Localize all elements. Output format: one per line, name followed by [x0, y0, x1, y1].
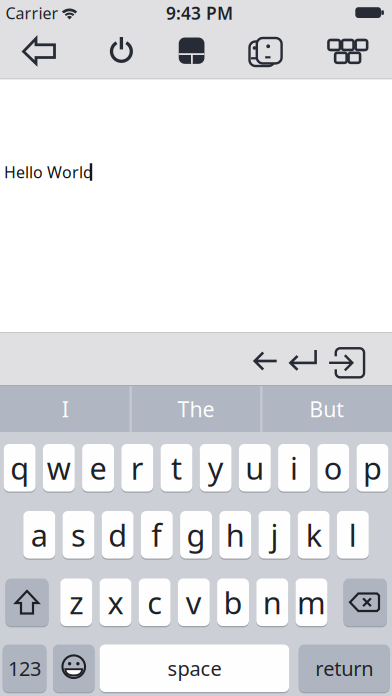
button[interactable]: p	[356, 442, 388, 493]
button[interactable]: space	[100, 643, 289, 693]
staticText: r	[131, 447, 144, 488]
staticText: 123	[8, 655, 41, 682]
button[interactable]: z	[60, 577, 92, 627]
staticText: y	[208, 447, 224, 488]
staticText: a	[31, 514, 48, 555]
staticText: m	[297, 582, 326, 623]
button[interactable]: n	[256, 577, 288, 627]
button[interactable]: e	[82, 442, 114, 493]
staticText: Hello World	[4, 161, 93, 183]
button[interactable]: I	[2, 386, 128, 432]
button[interactable]	[316, 27, 380, 77]
button[interactable]	[285, 341, 321, 381]
button[interactable]	[248, 341, 284, 381]
staticText: Carrier	[5, 2, 58, 24]
staticText: i	[290, 447, 298, 488]
button[interactable]: The	[133, 386, 259, 432]
staticText: 9:43 PM	[166, 1, 233, 24]
staticText: But	[309, 395, 344, 423]
staticText: e	[90, 447, 107, 488]
button[interactable]: m	[295, 577, 327, 627]
staticText: n	[263, 582, 282, 623]
button[interactable]: u	[239, 442, 271, 493]
button[interactable]: d	[102, 509, 134, 560]
staticText: p	[363, 447, 382, 488]
button[interactable]: i	[278, 442, 310, 493]
button[interactable]: t	[160, 442, 192, 493]
staticText: u	[245, 447, 264, 488]
staticText: d	[108, 514, 127, 555]
staticText: return	[315, 655, 373, 682]
button[interactable]: 123	[3, 643, 46, 693]
button[interactable]: o	[317, 442, 349, 493]
button[interactable]: r	[121, 442, 153, 493]
button[interactable]: l	[337, 509, 369, 560]
staticText: h	[226, 514, 245, 555]
button[interactable]: But	[264, 386, 390, 432]
staticText: z	[69, 582, 83, 623]
button[interactable]: v	[178, 577, 210, 627]
staticText: s	[71, 514, 86, 555]
button[interactable]	[160, 27, 224, 77]
button[interactable]	[5, 577, 48, 627]
staticText: l	[349, 514, 357, 555]
button[interactable]: s	[62, 509, 94, 560]
button[interactable]: j	[258, 509, 290, 560]
staticText: I	[62, 395, 69, 423]
staticText: j	[270, 514, 278, 555]
staticText: o	[324, 447, 343, 488]
button[interactable]: q	[4, 442, 36, 493]
button[interactable]: x	[99, 577, 131, 627]
button[interactable]	[53, 643, 94, 693]
button[interactable]: b	[217, 577, 249, 627]
staticText: q	[10, 447, 29, 488]
button[interactable]: k	[298, 509, 330, 560]
button[interactable]: h	[219, 509, 251, 560]
button[interactable]: c	[139, 577, 171, 627]
staticText: c	[147, 582, 162, 623]
button[interactable]	[89, 27, 153, 77]
staticText: w	[47, 447, 71, 488]
button[interactable]	[234, 27, 298, 77]
staticText: The	[177, 395, 214, 423]
staticText: x	[107, 582, 123, 623]
button[interactable]: g	[180, 509, 212, 560]
button[interactable]: y	[200, 442, 232, 493]
button[interactable]: a	[23, 509, 55, 560]
staticText: b	[224, 582, 243, 623]
staticText: t	[171, 447, 182, 488]
staticText: v	[186, 582, 202, 623]
button[interactable]: return	[299, 643, 390, 693]
staticText: k	[306, 514, 322, 555]
staticText: space	[167, 655, 221, 682]
button[interactable]: f	[141, 509, 173, 560]
button[interactable]: w	[43, 442, 75, 493]
staticText: g	[187, 514, 206, 555]
staticText: f	[151, 514, 162, 555]
button[interactable]	[343, 577, 387, 627]
button[interactable]	[325, 339, 369, 383]
button[interactable]	[7, 27, 71, 77]
